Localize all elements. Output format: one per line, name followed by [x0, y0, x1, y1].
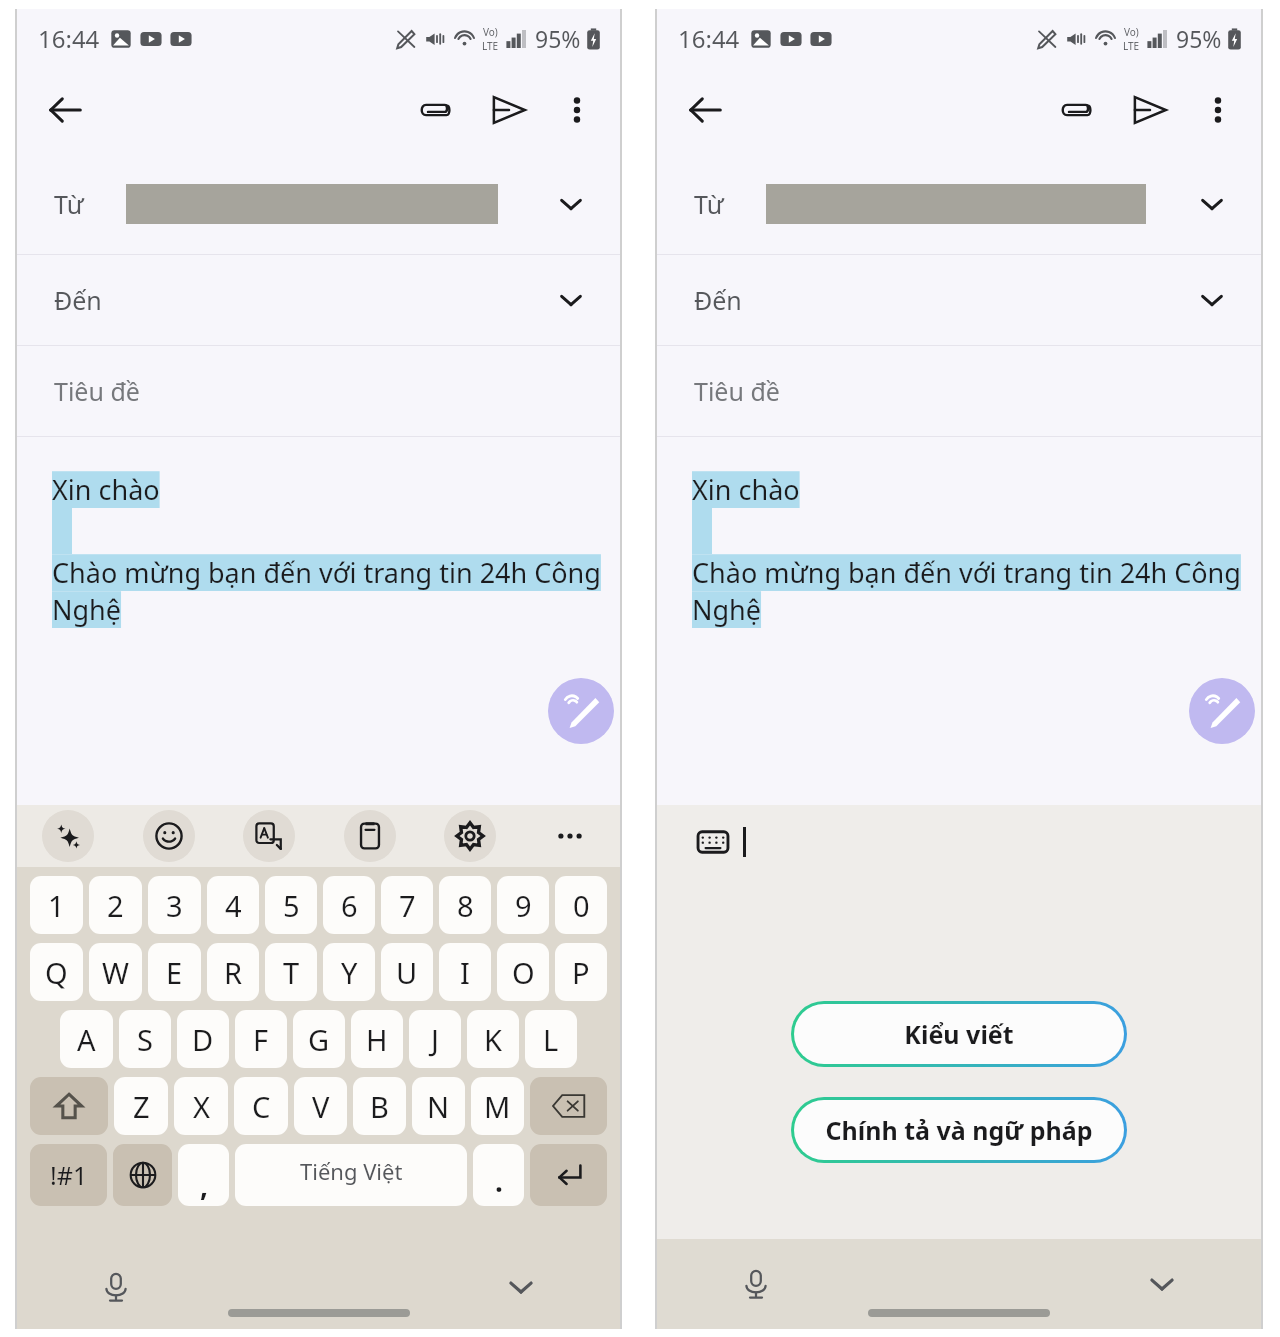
button[interactable]: . — [473, 1144, 524, 1206]
button[interactable]: Backspace — [530, 1077, 607, 1135]
button[interactable]: !#1 — [30, 1144, 107, 1206]
staticText: Z — [133, 1087, 150, 1126]
button[interactable]: Hide keyboard — [1138, 1260, 1186, 1308]
staticText: D — [192, 1020, 214, 1059]
button[interactable]: Voice input — [732, 1260, 780, 1308]
button[interactable]: Expand from — [1188, 180, 1236, 228]
button[interactable]: T — [265, 943, 317, 1001]
staticText: 4 — [225, 886, 242, 925]
button[interactable]: More options — [551, 84, 603, 136]
button[interactable]: G — [293, 1010, 345, 1068]
button[interactable]: Expand to — [547, 276, 595, 324]
button[interactable]: 7 — [381, 876, 433, 934]
button[interactable]: Voice input — [92, 1263, 140, 1311]
button[interactable]: Smart compose — [1189, 678, 1255, 744]
button[interactable]: 1 — [30, 876, 83, 934]
button[interactable]: N — [412, 1077, 465, 1135]
button[interactable]: Clipboard — [344, 810, 396, 862]
button[interactable]: F — [235, 1010, 287, 1068]
button[interactable]: Enter — [530, 1144, 607, 1206]
button[interactable]: Smart compose — [548, 678, 614, 744]
button[interactable]: , — [178, 1144, 229, 1206]
button[interactable]: Send — [1122, 82, 1178, 138]
staticText: T — [283, 953, 300, 992]
button[interactable]: Z — [114, 1077, 168, 1135]
staticText: Tiêu đề — [694, 374, 780, 408]
button[interactable]: Chính tả và ngữ pháp — [794, 1100, 1124, 1160]
button[interactable]: I — [439, 943, 491, 1001]
button[interactable]: Attach file — [1048, 82, 1104, 138]
staticText: V — [312, 1087, 330, 1126]
button[interactable]: M — [471, 1077, 524, 1135]
staticText: 16:44 — [678, 22, 740, 55]
button[interactable]: H — [351, 1010, 403, 1068]
button[interactable]: 6 — [323, 876, 375, 934]
button[interactable]: Show keyboard — [690, 819, 736, 865]
button[interactable]: Send — [481, 82, 537, 138]
staticText: 3 — [166, 886, 183, 925]
staticText: Chào mừng bạn đến với trang tin 24h Công — [52, 554, 601, 591]
button[interactable]: V — [294, 1077, 347, 1135]
button[interactable]: O — [497, 943, 549, 1001]
button[interactable]: 5 — [265, 876, 317, 934]
button[interactable]: 8 — [439, 876, 491, 934]
staticText: , — [200, 1166, 208, 1204]
button[interactable]: S — [119, 1010, 171, 1068]
staticText: 0 — [573, 886, 590, 925]
button[interactable]: Shift — [30, 1077, 108, 1135]
button[interactable]: L — [525, 1010, 577, 1068]
button[interactable]: Expand to — [1188, 276, 1236, 324]
button[interactable]: 9 — [497, 876, 549, 934]
staticText: G — [308, 1020, 330, 1059]
button[interactable]: Emoji — [143, 810, 195, 862]
staticText: Tiếng Việt — [300, 1156, 403, 1186]
button[interactable]: B — [353, 1077, 406, 1135]
button[interactable]: A — [60, 1010, 113, 1068]
button[interactable]: Back — [678, 83, 732, 137]
button[interactable]: Tiêu đề — [16, 346, 621, 436]
staticText: J — [431, 1020, 439, 1059]
button[interactable]: Hide keyboard — [497, 1263, 545, 1311]
button[interactable]: Translate — [243, 810, 295, 862]
button[interactable]: J — [409, 1010, 461, 1068]
button[interactable]: Change language — [113, 1144, 172, 1206]
staticText: Vo) — [483, 25, 498, 39]
button[interactable]: Space — [235, 1144, 467, 1206]
button[interactable]: Q — [30, 943, 83, 1001]
button[interactable]: Đến — [656, 255, 1262, 345]
button[interactable]: U — [381, 943, 433, 1001]
button[interactable]: Tiêu đề — [656, 346, 1262, 436]
button[interactable]: Attach file — [407, 82, 463, 138]
button[interactable]: Kiểu viết — [794, 1004, 1124, 1064]
button[interactable]: More — [545, 811, 595, 861]
button[interactable]: R — [207, 943, 259, 1001]
staticText: 95% — [535, 23, 581, 54]
staticText: Nghệ — [692, 591, 762, 628]
button[interactable]: K — [467, 1010, 519, 1068]
button[interactable]: P — [555, 943, 607, 1001]
button[interactable]: Y — [323, 943, 375, 1001]
button[interactable]: 0 — [555, 876, 607, 934]
staticText: 6 — [341, 886, 358, 925]
button[interactable]: 2 — [89, 876, 142, 934]
button[interactable]: W — [89, 943, 142, 1001]
button[interactable]: Expand from — [547, 180, 595, 228]
staticText: 7 — [399, 886, 416, 925]
button[interactable]: C — [234, 1077, 288, 1135]
button[interactable]: Back — [38, 83, 92, 137]
button[interactable]: X — [174, 1077, 228, 1135]
staticText: A — [77, 1020, 96, 1059]
button[interactable]: 4 — [207, 876, 259, 934]
button[interactable]: 3 — [148, 876, 201, 934]
staticText: E — [166, 953, 183, 992]
button[interactable]: E — [148, 943, 201, 1001]
staticText: Nghệ — [52, 591, 122, 628]
button[interactable]: Đến — [16, 255, 621, 345]
staticText: . — [495, 1162, 503, 1200]
button[interactable]: Keyboard settings — [444, 810, 496, 862]
button[interactable]: More options — [1192, 84, 1244, 136]
button[interactable]: AI assist — [42, 810, 94, 862]
button[interactable]: D — [177, 1010, 229, 1068]
staticText: L — [543, 1020, 559, 1059]
staticText: Tiêu đề — [54, 374, 140, 408]
